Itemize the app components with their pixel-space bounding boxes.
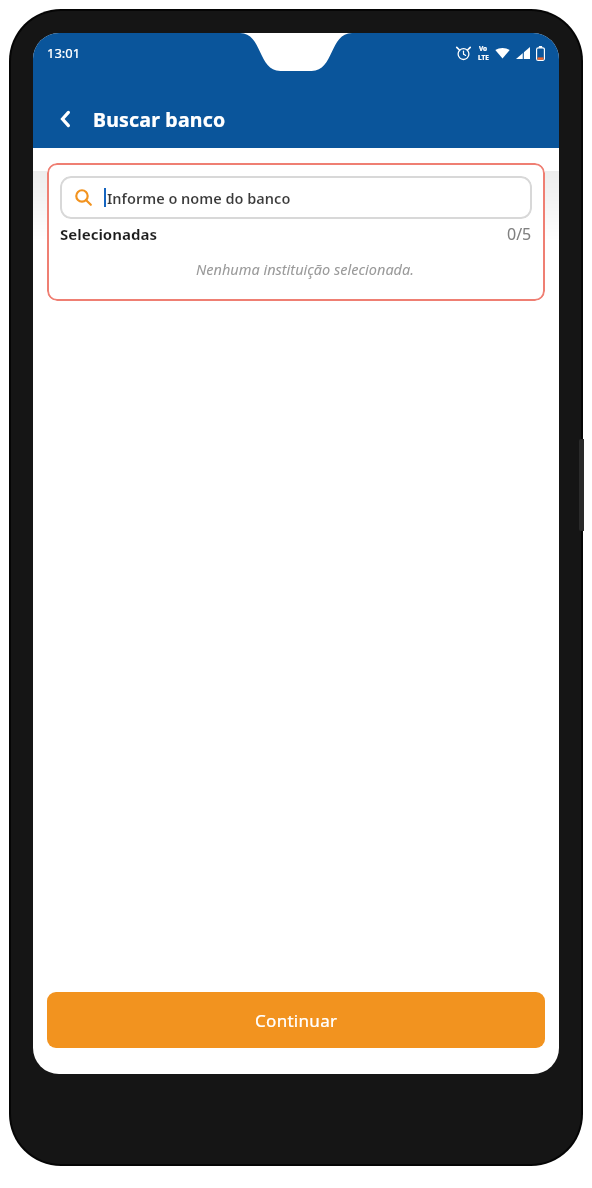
staticText: Buscar banco (93, 106, 226, 133)
staticText: Informe o nome do banco (107, 188, 291, 208)
staticText: Selecionadas (60, 224, 157, 244)
staticText: Nenhuma instituição selecionada. (78, 259, 532, 279)
button[interactable]: Voltar (45, 99, 85, 139)
button[interactable]: Informe o nome do banco (60, 176, 532, 219)
staticText: 13:01 (47, 44, 81, 62)
staticText: 0/5 (507, 223, 532, 245)
staticText: Continuar (255, 1009, 338, 1032)
staticText: Vo (479, 44, 488, 53)
button[interactable]: Continuar (47, 992, 545, 1048)
staticText: LTE (478, 53, 489, 62)
